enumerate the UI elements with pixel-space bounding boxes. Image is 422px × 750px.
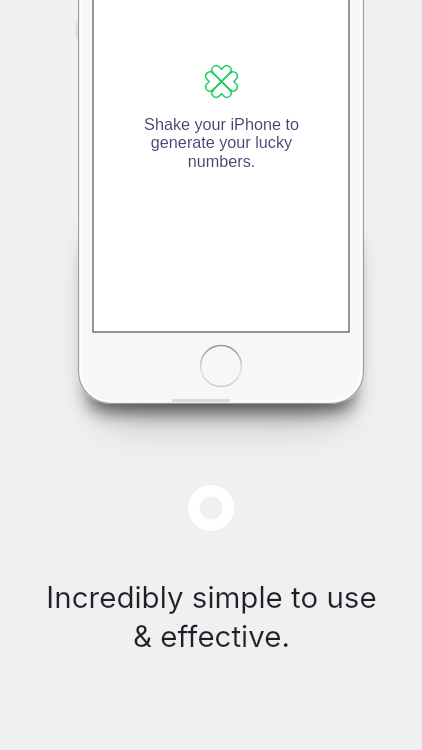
staticText: Shake your iPhone to generate your lucky… [144,115,299,171]
button[interactable]: Page indicator [188,485,234,531]
staticText: Incredibly simple to use & effective. [46,579,377,654]
